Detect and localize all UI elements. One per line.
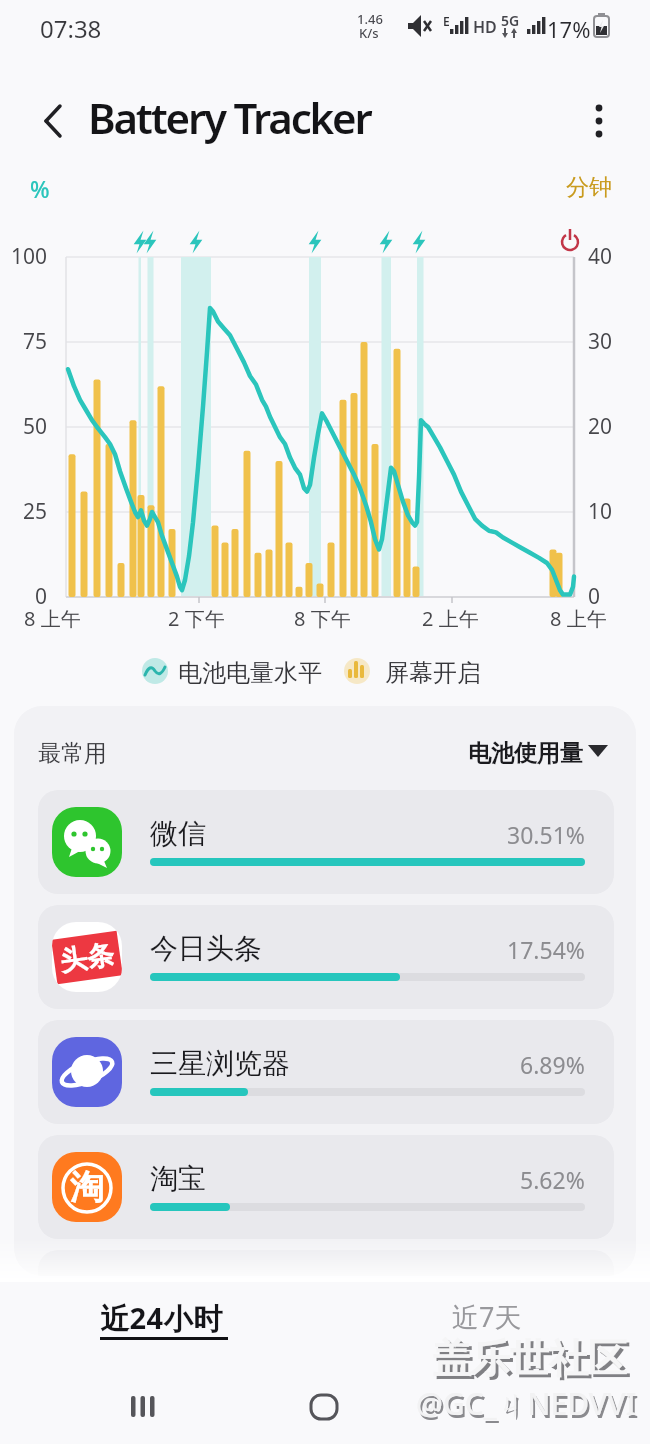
staticText: 8 上午 bbox=[550, 605, 607, 632]
staticText: @GC_ㄐNEDVVI bbox=[418, 1386, 639, 1427]
staticText: 100 bbox=[11, 242, 48, 271]
button[interactable] bbox=[440, 1292, 532, 1344]
staticText: 75 bbox=[23, 327, 48, 356]
staticText: 5G bbox=[501, 11, 520, 30]
staticText: 头条 bbox=[58, 937, 116, 979]
staticText: 07:38 bbox=[40, 12, 102, 45]
staticText: 淘宝 bbox=[150, 1161, 206, 1196]
button[interactable]: 淘 bbox=[38, 1135, 614, 1239]
staticText: 30.51% bbox=[507, 819, 585, 850]
button[interactable]: 头条 bbox=[38, 905, 614, 1009]
staticText: 今日头条 bbox=[150, 931, 262, 966]
button[interactable] bbox=[38, 1250, 614, 1276]
staticText: 17% bbox=[547, 14, 591, 44]
button[interactable]: 三星浏览器 bbox=[38, 1020, 614, 1124]
staticText: Battery Tracker bbox=[88, 89, 371, 146]
staticText: 盖乐世社区 bbox=[435, 1337, 630, 1386]
staticText: 17.54% bbox=[507, 934, 585, 965]
staticText: 0 bbox=[35, 582, 48, 611]
staticText: @GC_ㄐNEDVVI bbox=[416, 1383, 637, 1424]
button[interactable] bbox=[120, 1385, 180, 1430]
staticText: 最常用 bbox=[38, 739, 107, 768]
button[interactable] bbox=[300, 1385, 360, 1430]
staticText: 6.89% bbox=[520, 1049, 585, 1080]
staticText: 30 bbox=[588, 327, 613, 356]
staticText: 50 bbox=[23, 412, 48, 441]
button[interactable] bbox=[88, 1292, 240, 1344]
staticText: 电池电量水平 bbox=[178, 658, 322, 688]
staticText: 8 上午 bbox=[24, 605, 81, 632]
staticText: 2 上午 bbox=[422, 605, 479, 632]
staticText: 近24小时 bbox=[100, 1298, 223, 1338]
staticText: 0 bbox=[588, 582, 601, 611]
staticText: % bbox=[30, 173, 50, 204]
button[interactable]: 微信 bbox=[38, 790, 614, 894]
staticText: 近7天 bbox=[452, 1298, 522, 1335]
button[interactable]: 电池使用量 bbox=[383, 739, 583, 768]
staticText: 10 bbox=[588, 497, 613, 526]
staticText: 1.46 bbox=[357, 10, 383, 28]
staticText: K/s bbox=[359, 24, 379, 42]
staticText: 2 下午 bbox=[168, 605, 225, 632]
staticText: 40 bbox=[588, 242, 613, 271]
staticText: 8 下午 bbox=[294, 605, 351, 632]
staticText: 屏幕开启 bbox=[385, 658, 481, 688]
staticText: E bbox=[443, 13, 450, 29]
staticText: 25 bbox=[23, 497, 48, 526]
staticText: 微信 bbox=[150, 816, 206, 851]
staticText: 分钟 bbox=[566, 173, 612, 202]
button[interactable] bbox=[580, 98, 620, 144]
staticText: 电池使用量 bbox=[468, 739, 583, 768]
staticText: HD bbox=[473, 16, 497, 38]
staticText: 盖乐世社区 bbox=[432, 1334, 627, 1383]
button[interactable] bbox=[30, 98, 76, 144]
staticText: 三星浏览器 bbox=[150, 1046, 290, 1081]
staticText: 20 bbox=[588, 412, 613, 441]
staticText: 淘 bbox=[70, 1166, 104, 1209]
staticText: 5.62% bbox=[520, 1164, 585, 1195]
